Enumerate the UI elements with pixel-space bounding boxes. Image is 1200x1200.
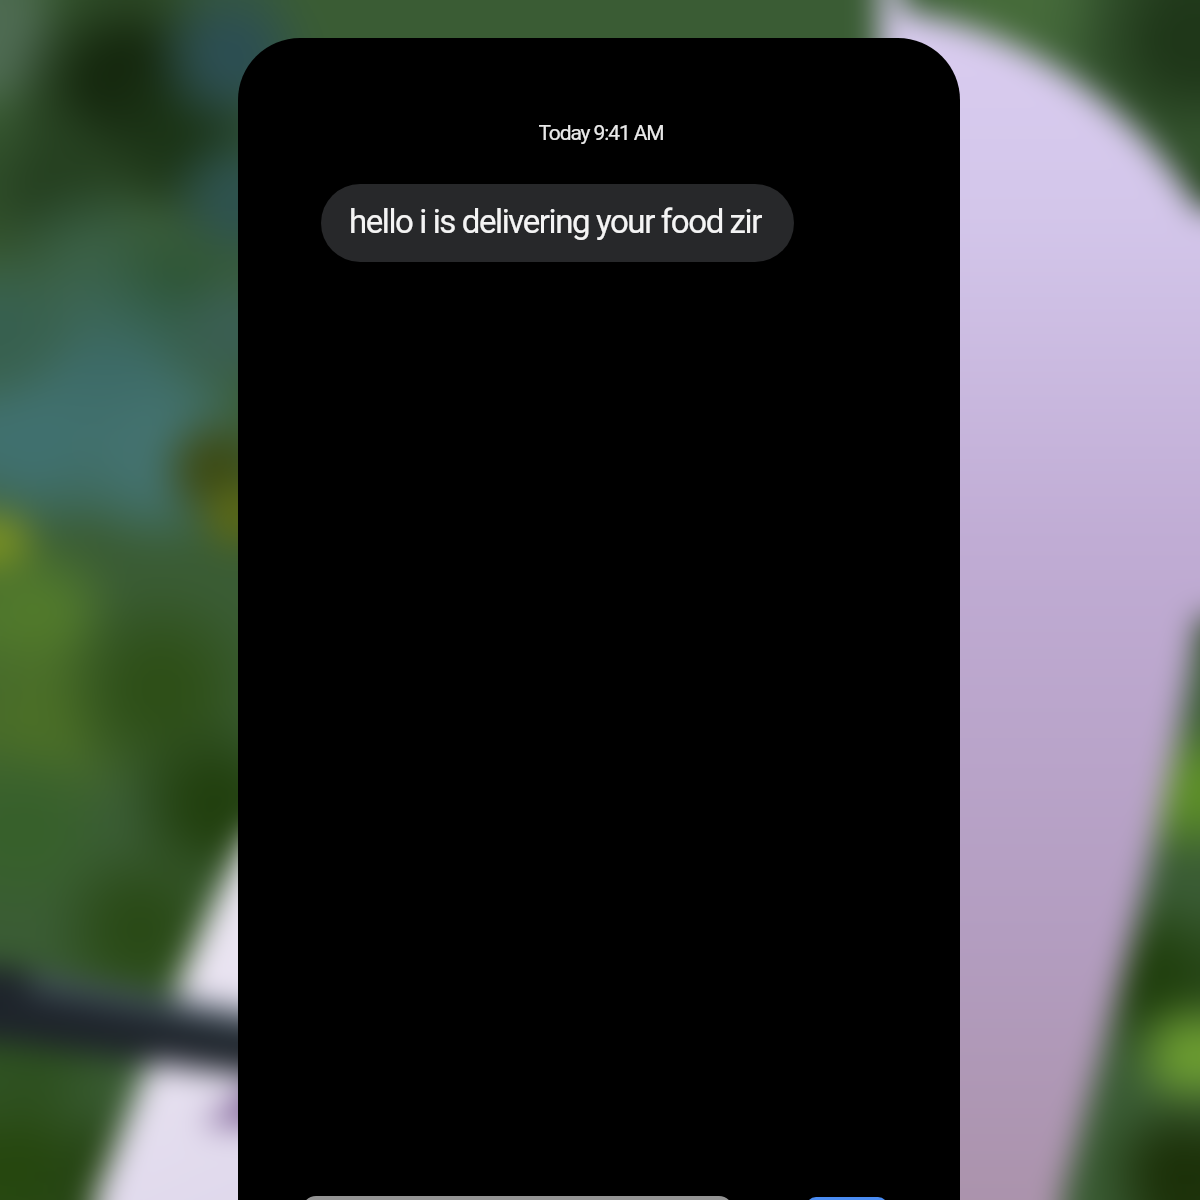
button[interactable]: Text message input field (302, 1196, 733, 1200)
staticText: hello i is delivering your food zir (349, 202, 762, 241)
staticText: Today 9:41 AM (240, 121, 960, 146)
button[interactable]: hello i is delivering your food zir (321, 184, 794, 262)
button[interactable]: Send (806, 1197, 888, 1200)
